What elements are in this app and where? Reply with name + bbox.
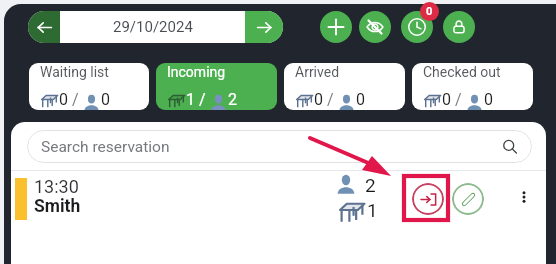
button[interactable]: Search reservation bbox=[27, 130, 532, 163]
staticText: 0 bbox=[59, 90, 68, 109]
button[interactable]: Incoming bbox=[156, 63, 277, 110]
staticText: Search reservation bbox=[41, 138, 170, 156]
button[interactable]: Arrived bbox=[284, 63, 405, 110]
staticText: / bbox=[323, 90, 338, 109]
staticText: 0 bbox=[314, 90, 323, 109]
staticText: 0 bbox=[484, 90, 493, 109]
button[interactable]: Pending requests bbox=[401, 11, 433, 43]
button[interactable]: Checked out bbox=[412, 63, 533, 110]
staticText: 0 bbox=[426, 5, 433, 18]
staticText: Smith bbox=[34, 196, 81, 217]
button[interactable]: Hide bbox=[359, 11, 391, 43]
staticText: Arrived bbox=[295, 64, 340, 80]
staticText: 0 bbox=[442, 90, 451, 109]
staticText: Waiting list bbox=[40, 64, 109, 80]
staticText: 1 bbox=[367, 199, 378, 221]
staticText: / bbox=[68, 90, 83, 109]
staticText: 2 bbox=[365, 174, 376, 196]
staticText: 13:30 bbox=[34, 176, 79, 197]
staticText: 0 bbox=[101, 90, 110, 109]
button[interactable]: More options bbox=[510, 183, 538, 211]
staticText: 1 bbox=[186, 90, 195, 109]
button[interactable]: Check in bbox=[412, 183, 444, 215]
button[interactable]: Edit bbox=[452, 183, 484, 215]
staticText: / bbox=[195, 90, 210, 109]
button[interactable]: Lock bbox=[443, 11, 475, 43]
staticText: / bbox=[451, 90, 466, 109]
button[interactable]: Add new reservation bbox=[320, 11, 352, 43]
button[interactable]: Previous day bbox=[28, 11, 60, 43]
button[interactable]: Waiting list bbox=[29, 63, 149, 110]
staticText: Checked out bbox=[423, 64, 501, 80]
button[interactable]: Next day bbox=[245, 11, 283, 43]
staticText: 29/10/2024 bbox=[113, 18, 193, 36]
staticText: 0 bbox=[356, 90, 365, 109]
staticText: Incoming bbox=[167, 64, 226, 80]
button[interactable]: 13:30 bbox=[11, 171, 546, 223]
staticText: 2 bbox=[228, 90, 237, 109]
